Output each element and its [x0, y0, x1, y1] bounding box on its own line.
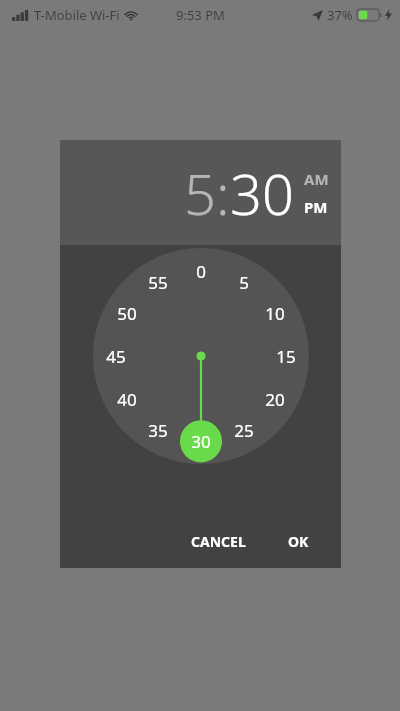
button[interactable]: AM [304, 169, 329, 189]
staticText: 10 [265, 302, 285, 325]
staticText: 9:53 PM [176, 6, 225, 24]
staticText: 55 [148, 271, 168, 294]
staticText: 0 [196, 260, 206, 283]
button[interactable]: 30 [230, 155, 294, 231]
staticText: 50 [117, 302, 137, 325]
staticText: 40 [117, 388, 137, 411]
staticText: 15 [276, 345, 296, 368]
button[interactable]: OK [278, 526, 319, 557]
staticText: : [216, 155, 230, 231]
staticText: T-Mobile Wi-Fi [34, 6, 120, 24]
button[interactable]: Minute selector clock [93, 248, 309, 464]
staticText: 45 [106, 345, 126, 368]
staticText: 30 [191, 430, 211, 453]
button[interactable]: PM [304, 197, 328, 217]
staticText: 20 [265, 388, 285, 411]
staticText: 35 [148, 419, 168, 442]
staticText: 25 [234, 419, 254, 442]
staticText: CANCEL [191, 532, 246, 551]
staticText: OK [288, 532, 309, 551]
button[interactable]: CANCEL [181, 526, 256, 557]
staticText: 37% [327, 6, 353, 24]
staticText: 5 [239, 271, 249, 294]
button[interactable]: 5 [184, 155, 216, 231]
